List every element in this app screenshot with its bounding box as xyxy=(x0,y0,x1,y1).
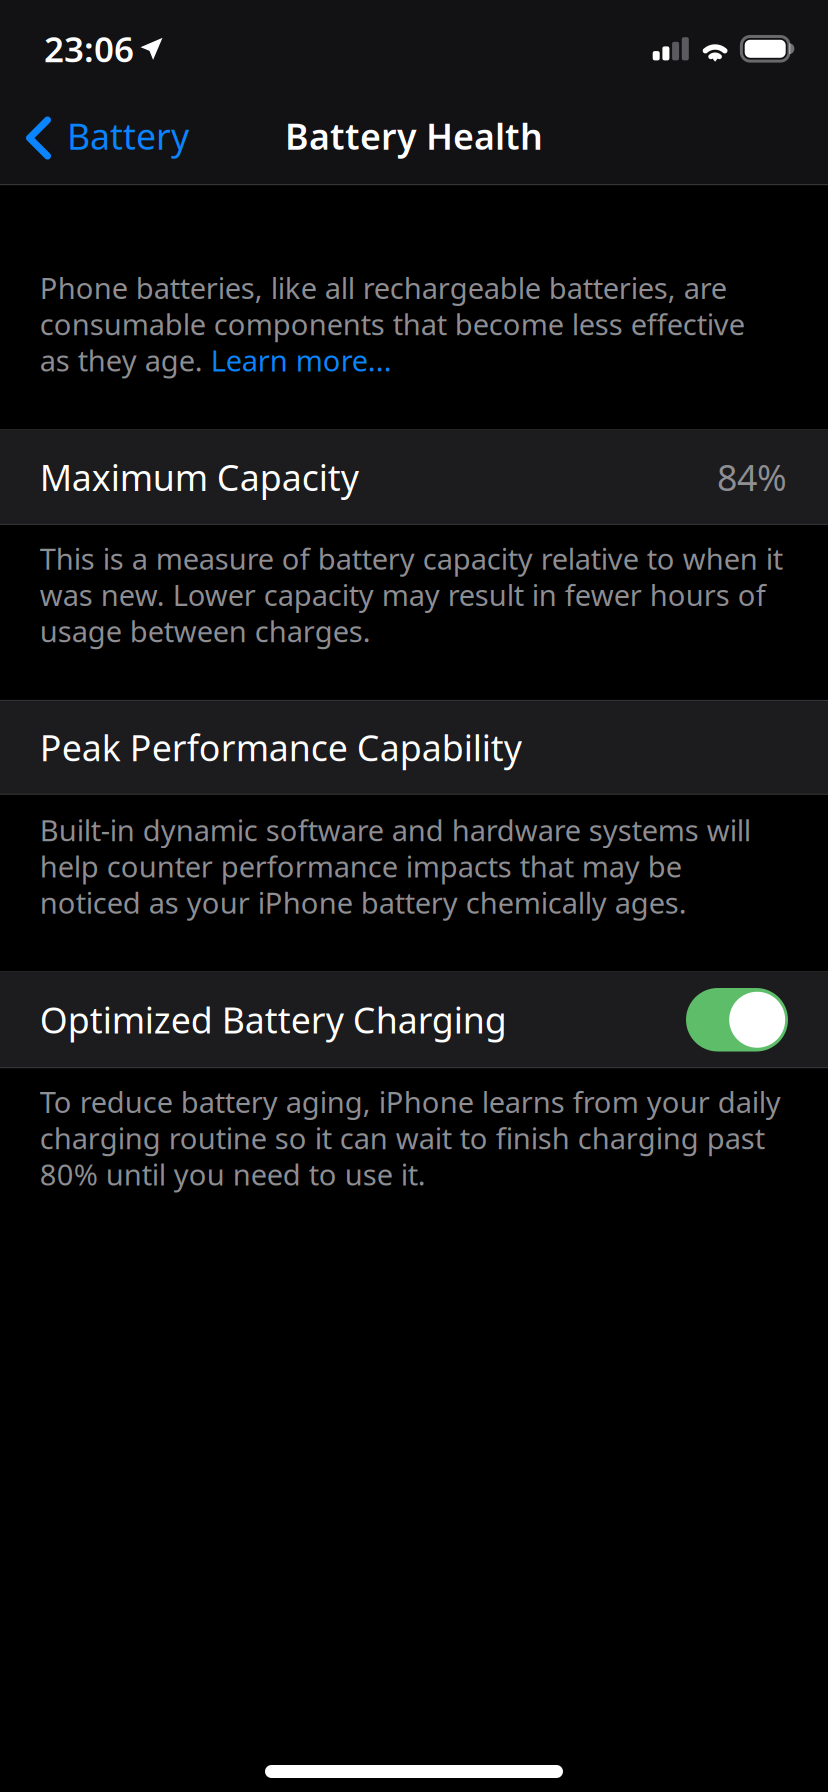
staticText: Optimized Battery Charging xyxy=(40,995,507,1044)
staticText: This is a measure of battery capacity re… xyxy=(40,540,783,649)
staticText: Maximum Capacity xyxy=(40,453,359,501)
staticText: Peak Performance Capability xyxy=(40,723,522,772)
staticText: 23:06 xyxy=(44,25,134,73)
button[interactable]: Peak Performance Capability xyxy=(0,701,828,794)
staticText: Battery Health xyxy=(285,112,543,160)
button[interactable]: Battery xyxy=(0,88,205,184)
button[interactable]: Optimized Battery Charging xyxy=(0,972,828,1067)
staticText: Phone batteries, like all rechargeable b… xyxy=(40,270,745,378)
staticText: 84% xyxy=(717,453,787,501)
staticText: Battery xyxy=(67,112,189,160)
staticText: To reduce battery aging, iPhone learns f… xyxy=(40,1084,781,1192)
staticText: Built-in dynamic software and hardware s… xyxy=(40,812,751,920)
